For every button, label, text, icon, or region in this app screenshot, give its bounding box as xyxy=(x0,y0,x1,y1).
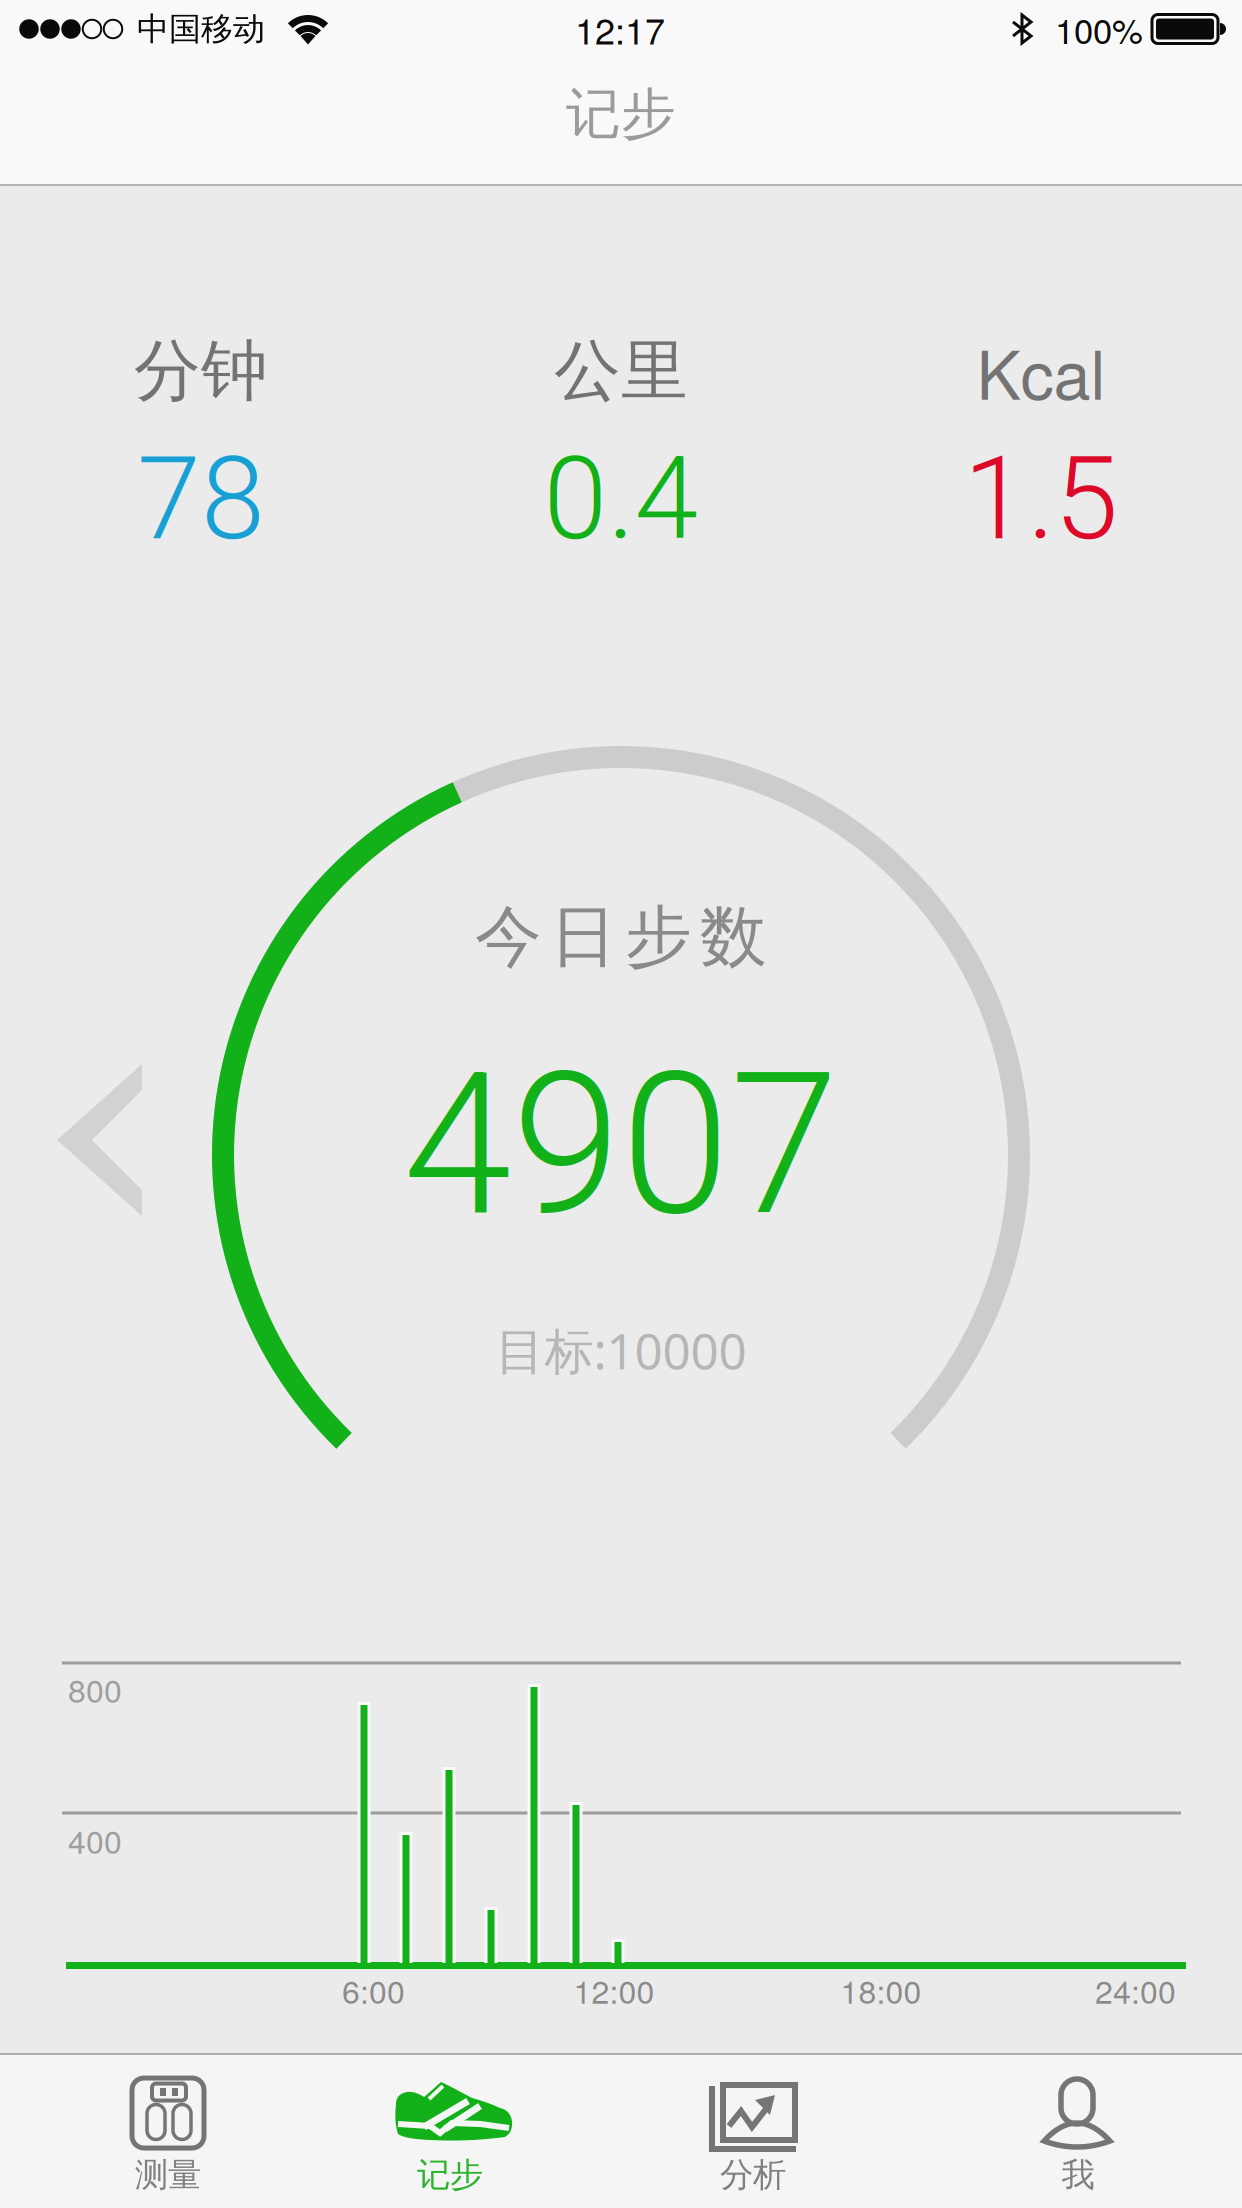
staticText: 6:00 xyxy=(342,1967,405,2013)
staticText: 公里 xyxy=(554,330,688,412)
staticText: 0.4 xyxy=(543,432,698,566)
staticText: 400 xyxy=(68,1817,122,1863)
staticText: 24:00 xyxy=(1095,1967,1176,2013)
button[interactable]: 分析 xyxy=(603,2053,903,2208)
staticText: 78 xyxy=(137,432,265,566)
staticText: 100% xyxy=(1055,4,1143,54)
button[interactable]: 测量 xyxy=(18,2053,318,2208)
staticText: 18:00 xyxy=(840,1967,921,2013)
staticText: 分析 xyxy=(720,2154,786,2195)
staticText: 中国移动 xyxy=(137,9,265,49)
staticText: 我 xyxy=(1061,2154,1094,2195)
staticText: 目标:10000 xyxy=(495,1317,746,1383)
staticText: 800 xyxy=(68,1666,122,1712)
button[interactable] xyxy=(38,1062,162,1232)
staticText: 1.5 xyxy=(963,432,1118,566)
staticText: 记步 xyxy=(417,2154,483,2195)
staticText: 12:00 xyxy=(573,1967,654,2013)
staticText: 记步 xyxy=(566,80,676,147)
staticText: 分钟 xyxy=(134,330,268,412)
staticText: 今日步数 xyxy=(475,896,767,978)
staticText: 测量 xyxy=(135,2154,201,2195)
staticText: 12:17 xyxy=(575,3,665,55)
staticText: 4907 xyxy=(403,1030,839,1260)
staticText: Kcal xyxy=(976,323,1105,419)
button[interactable]: 记步 xyxy=(300,2053,600,2208)
button[interactable]: 我 xyxy=(928,2053,1228,2208)
